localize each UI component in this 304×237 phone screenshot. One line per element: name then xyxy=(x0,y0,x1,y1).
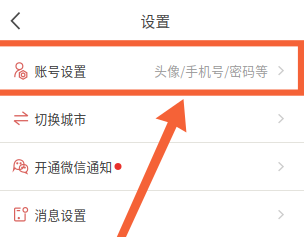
staticText: 设置 xyxy=(140,10,170,31)
button[interactable]: 切换城市 xyxy=(0,95,304,142)
button[interactable]: 账号设置 xyxy=(0,47,304,94)
staticText: 账号设置 xyxy=(34,61,86,80)
staticText: 消息设置 xyxy=(34,205,86,224)
staticText: 开通微信通知 xyxy=(34,157,112,176)
staticText: 切换城市 xyxy=(34,109,86,128)
button[interactable]: 开通微信通知 xyxy=(0,143,304,190)
button[interactable]: 消息设置 xyxy=(0,191,304,237)
staticText: 头像/手机号/密码等 xyxy=(154,61,268,80)
button[interactable]: Back xyxy=(0,2,35,43)
